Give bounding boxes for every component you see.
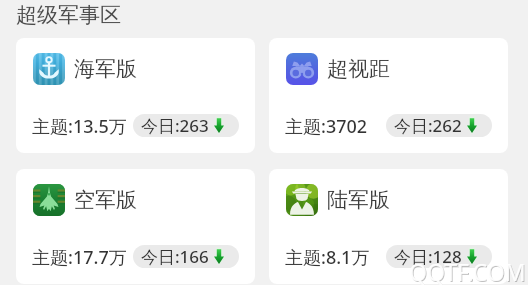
button[interactable]: 今日:128 xyxy=(386,245,492,268)
staticText: 今日:263 xyxy=(141,114,209,137)
button[interactable]: 陆军版 xyxy=(269,169,508,284)
button[interactable]: 空军版 xyxy=(16,169,255,284)
staticText: 超级军事区 xyxy=(16,2,121,28)
staticText: 陆军版 xyxy=(327,187,390,213)
button[interactable]: 超视距 xyxy=(269,38,508,153)
staticText: 空军版 xyxy=(74,187,137,213)
button[interactable]: 今日:263 xyxy=(133,114,239,137)
staticText: 主题:8.1万 xyxy=(285,245,370,268)
staticText: 主题:13.5万 xyxy=(32,114,127,137)
button[interactable]: 海军版 xyxy=(16,38,255,153)
staticText: QQTF.COM xyxy=(410,257,527,285)
staticText: 主题:17.7万 xyxy=(32,245,127,268)
staticText: 今日:128 xyxy=(394,245,462,268)
staticText: 主题:3702 xyxy=(285,114,368,137)
staticText: 今日:166 xyxy=(141,245,209,268)
button[interactable]: 今日:166 xyxy=(133,245,239,268)
staticText: 今日:262 xyxy=(394,114,462,137)
staticText: 海军版 xyxy=(74,56,137,82)
staticText: 超视距 xyxy=(327,56,390,82)
staticText: QQTF.COM xyxy=(409,256,526,285)
button[interactable]: 今日:262 xyxy=(386,114,492,137)
